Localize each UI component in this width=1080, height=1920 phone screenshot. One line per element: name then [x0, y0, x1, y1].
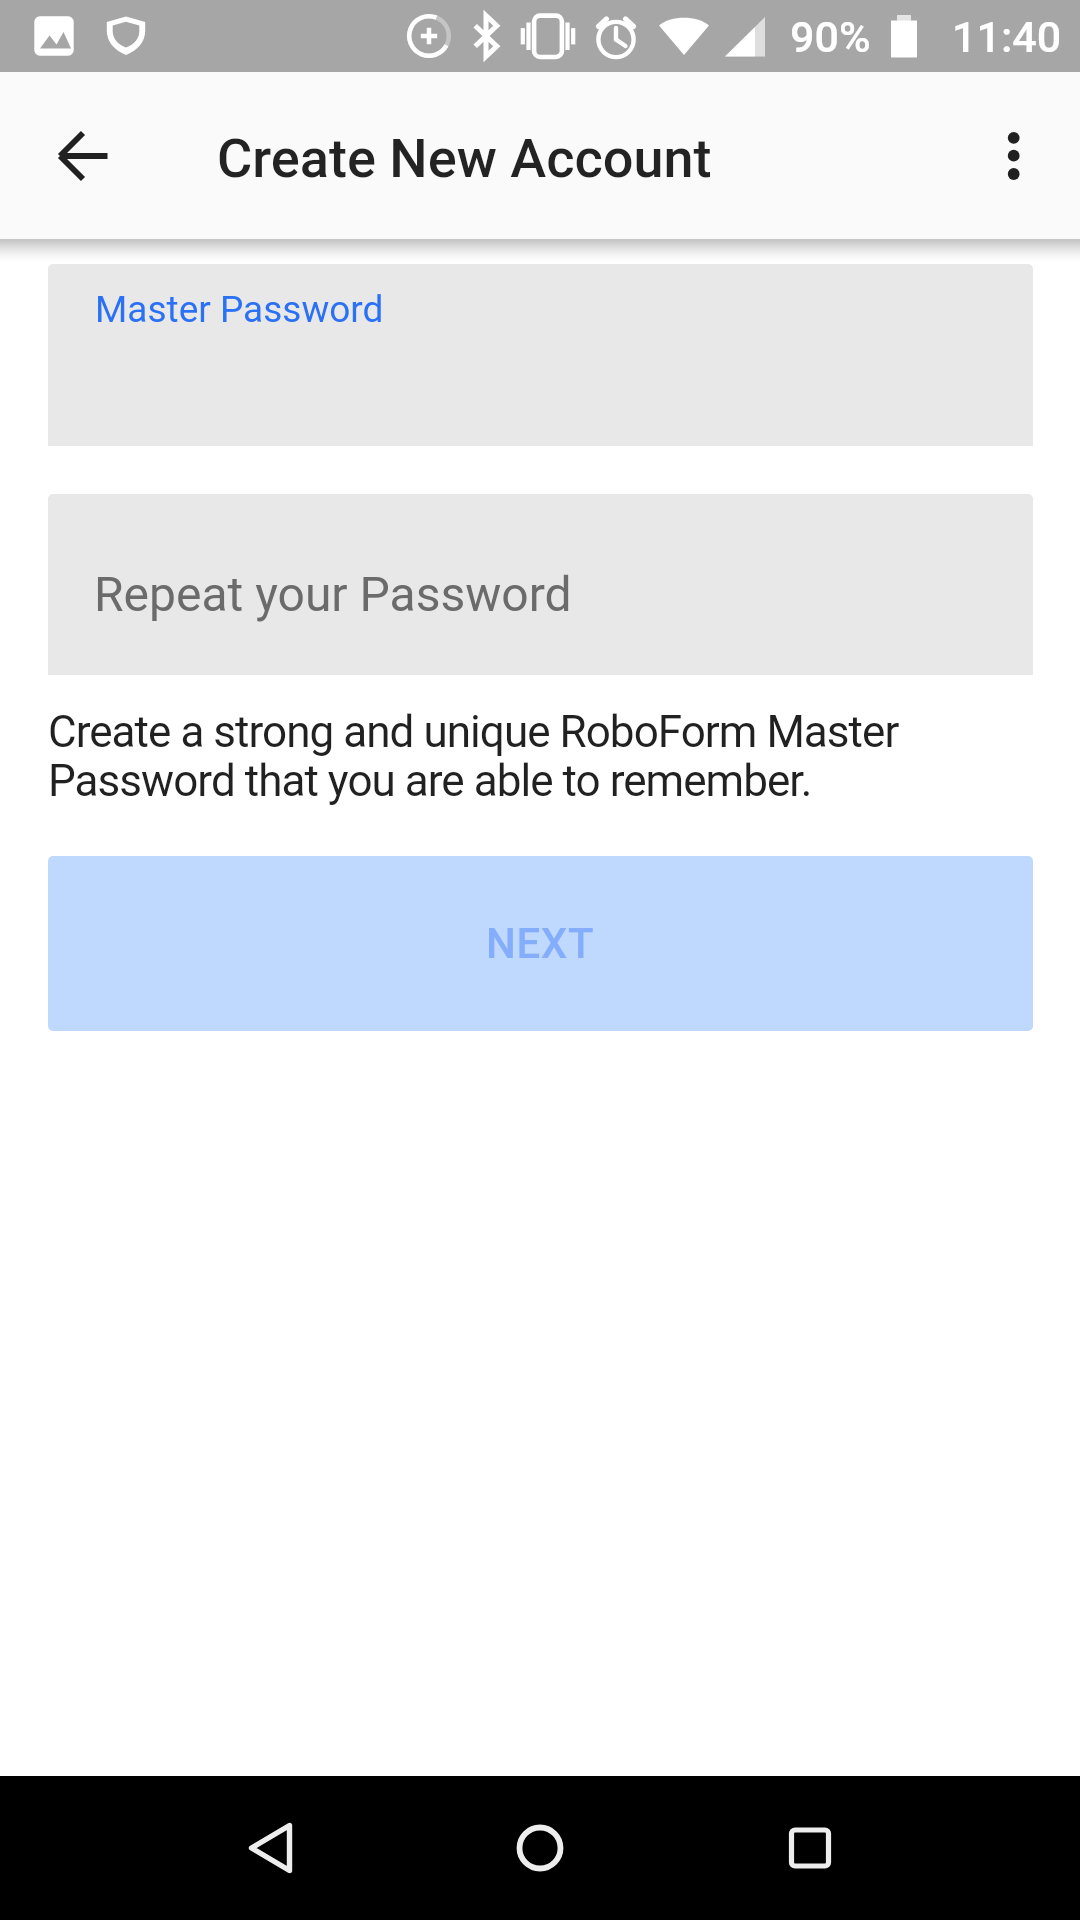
button[interactable]: More options: [966, 108, 1062, 204]
staticText: Create New Account: [217, 127, 712, 190]
staticText: NEXT: [486, 919, 595, 968]
staticText: 11:40: [952, 12, 1062, 62]
staticText: 90%: [790, 12, 871, 62]
button[interactable]: Navigate up: [36, 108, 132, 204]
button[interactable]: Master Password: [48, 264, 1033, 446]
staticText: Master Password: [95, 288, 384, 331]
button[interactable]: Recent apps: [750, 1788, 870, 1908]
button[interactable]: Back: [210, 1788, 330, 1908]
button[interactable]: NEXT: [48, 856, 1033, 1031]
button[interactable]: Home: [480, 1788, 600, 1908]
staticText: Repeat your Password: [94, 566, 572, 622]
staticText: Create a strong and unique RoboForm Mast…: [48, 706, 948, 807]
button[interactable]: Repeat your Password: [48, 494, 1033, 675]
